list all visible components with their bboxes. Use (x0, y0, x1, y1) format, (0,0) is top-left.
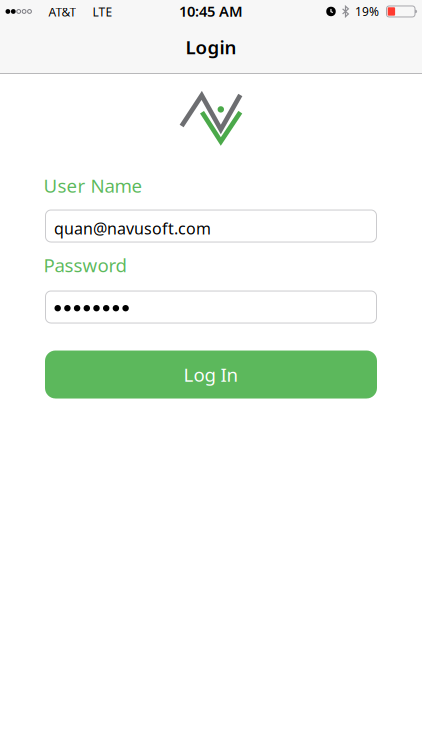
button[interactable]: Log In (45, 350, 377, 398)
staticText: AT&T (48, 4, 76, 20)
staticText: 19% (355, 3, 379, 19)
staticText: Password (43, 252, 126, 277)
staticText: User Name (43, 173, 142, 198)
button[interactable]: User Name text field (45, 209, 377, 242)
staticText: Login (185, 34, 236, 59)
staticText: LTE (92, 4, 112, 20)
staticText: quan@navusoft.com (54, 218, 211, 239)
button[interactable]: Password text field (45, 290, 377, 323)
staticText: Log In (183, 362, 238, 387)
staticText: 10:45 AM (179, 1, 243, 21)
